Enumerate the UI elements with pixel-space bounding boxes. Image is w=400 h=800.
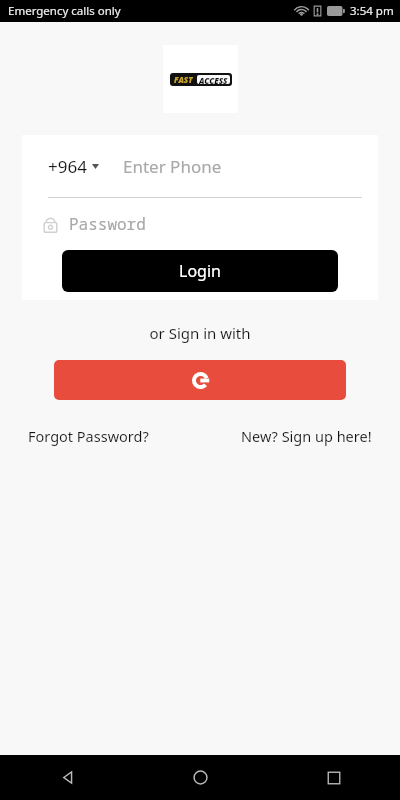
button[interactable]: Login: [62, 250, 338, 292]
staticText: +964: [48, 155, 87, 178]
button[interactable]: Password: [42, 198, 358, 250]
staticText: 3:54 pm: [350, 3, 394, 19]
staticText: Login: [179, 260, 221, 282]
staticText: FAST: [174, 74, 193, 85]
staticText: Enter Phone: [123, 155, 222, 178]
staticText: Forgot Password?: [28, 426, 149, 446]
button[interactable]: Home: [134, 755, 267, 800]
staticText: ACCESS: [199, 75, 228, 84]
button[interactable]: Recent apps: [267, 755, 400, 800]
button[interactable]: Back: [0, 755, 134, 800]
button[interactable]: Sign in with Google: [54, 360, 346, 400]
button[interactable]: Enter Phone: [123, 155, 358, 178]
staticText: Password: [69, 213, 146, 235]
staticText: Emergency calls only: [8, 3, 121, 19]
button[interactable]: New? Sign up here!: [241, 426, 372, 446]
button[interactable]: +964: [48, 155, 99, 178]
button[interactable]: Forgot Password?: [28, 426, 149, 446]
staticText: New? Sign up here!: [241, 426, 372, 446]
staticText: or Sign in with: [0, 323, 400, 343]
